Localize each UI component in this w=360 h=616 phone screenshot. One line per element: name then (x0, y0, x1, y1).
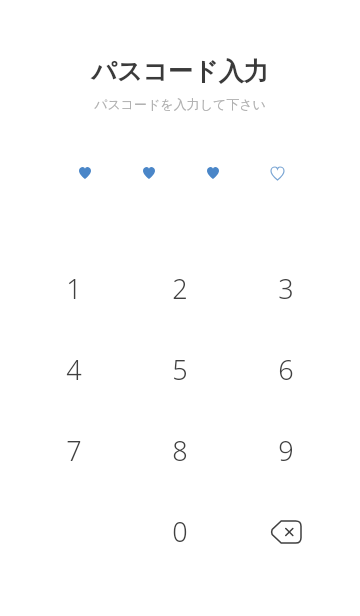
staticText: 8 (172, 432, 188, 469)
staticText: 4 (66, 351, 82, 388)
button[interactable]: 7 (0, 410, 148, 491)
button[interactable]: 4 (0, 329, 148, 410)
staticText: 0 (172, 513, 188, 550)
button[interactable]: 5 (148, 329, 212, 410)
staticText: 7 (66, 432, 82, 469)
button[interactable]: 2 (148, 248, 212, 329)
button[interactable]: 9 (212, 410, 360, 491)
button[interactable]: 3 (212, 248, 360, 329)
staticText: パスコード入力 (0, 56, 360, 87)
button[interactable]: Backspace (212, 491, 360, 572)
button[interactable]: 8 (148, 410, 212, 491)
staticText: 5 (172, 351, 188, 388)
button[interactable]: 1 (0, 248, 148, 329)
staticText: 9 (278, 432, 294, 469)
button[interactable]: 0 (148, 491, 212, 572)
staticText: 2 (172, 270, 188, 307)
button[interactable]: 6 (212, 329, 360, 410)
staticText: 3 (278, 270, 294, 307)
staticText: 1 (66, 270, 82, 307)
staticText: 6 (278, 351, 294, 388)
staticText: パスコードを入力して下さい (0, 96, 360, 112)
